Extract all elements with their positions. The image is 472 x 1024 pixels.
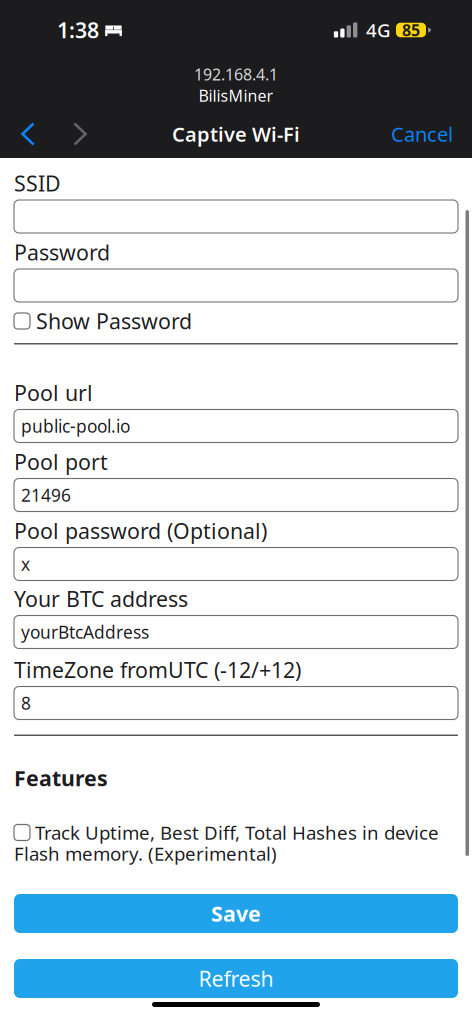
staticText: Password [14, 238, 110, 266]
button[interactable]: Refresh [14, 959, 458, 998]
staticText: Pool password (Optional) [14, 516, 267, 545]
staticText: TimeZone fromUTC (-12/+12) [14, 655, 301, 684]
button[interactable]: Forward [60, 114, 100, 154]
staticText: Save [211, 899, 261, 928]
staticText: BilisMiner [198, 85, 273, 106]
staticText: Show Password [36, 307, 192, 335]
staticText: 21496 [21, 483, 71, 506]
button[interactable]: Back [8, 114, 48, 154]
staticText: 8 [21, 691, 31, 714]
staticText: Cancel [391, 121, 453, 147]
staticText: public-pool.io [21, 414, 130, 437]
staticText: Track Uptime, Best Diff, Total Hashes in… [35, 820, 439, 845]
staticText: Refresh [198, 964, 273, 993]
button[interactable]: Save [14, 894, 458, 933]
staticText: 1:38 [57, 16, 99, 44]
staticText: Features [14, 764, 108, 792]
staticText: SSID [14, 169, 61, 197]
staticText: Your BTC address [14, 584, 188, 613]
staticText: Captive Wi-Fi [172, 121, 300, 147]
staticText: 192.168.4.1 [194, 64, 278, 85]
staticText: yourBtcAddress [21, 620, 149, 643]
staticText: Pool url [14, 378, 93, 407]
staticText: 4G [366, 18, 391, 42]
staticText: 85 [402, 19, 420, 41]
button[interactable]: Cancel [383, 114, 464, 154]
staticText: Pool port [14, 447, 108, 476]
staticText: x [21, 552, 30, 575]
staticText: Flash memory. (Experimental) [14, 841, 277, 866]
